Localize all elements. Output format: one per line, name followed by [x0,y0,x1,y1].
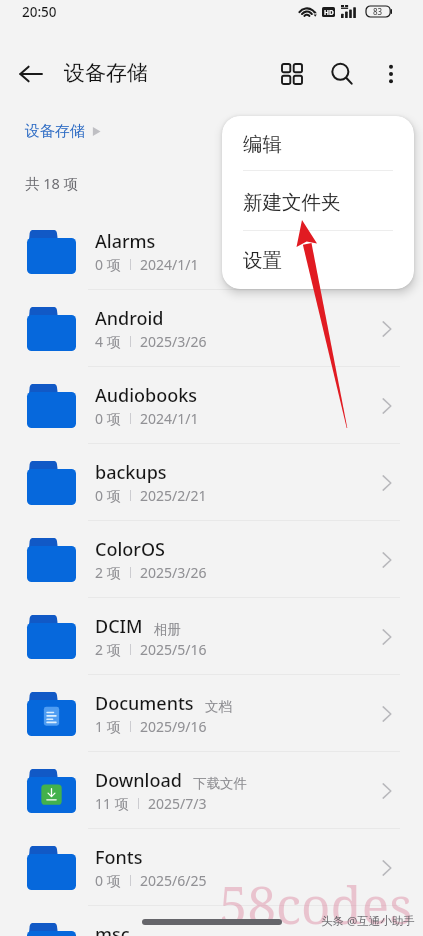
staticText: HD [324,8,334,17]
button[interactable]: Search [320,52,364,96]
button[interactable]: backups [0,444,423,521]
staticText: 0 项 [95,255,121,274]
button[interactable]: Audiobooks [0,367,423,444]
staticText: Fonts [95,845,143,870]
staticText: 2025/3/26 [140,332,207,351]
button[interactable]: Back [9,52,53,96]
button[interactable]: msc [0,906,423,936]
staticText: DCIM [95,614,143,639]
staticText: 2 项 [95,640,121,659]
staticText: 2025/5/16 [140,640,207,659]
button[interactable]: 设置 [222,232,414,289]
staticText: 设备存储 [25,122,85,141]
staticText: Download [95,768,182,793]
staticText: Documents [95,691,194,716]
staticText: backups [95,460,167,485]
staticText: 2 项 [95,563,121,582]
staticText: 设备存储 [64,60,148,86]
staticText: 58codes [219,869,413,936]
button[interactable]: Documents [0,675,423,752]
staticText: 编辑 [243,132,282,157]
button[interactable]: Fonts [0,829,423,906]
button[interactable]: 设备存储 [25,122,101,141]
button[interactable]: Alarms [0,213,423,290]
button[interactable]: More options [369,52,413,96]
staticText: 0 项 [95,486,121,505]
staticText: 2025/2/21 [140,486,207,505]
staticText: Android [95,306,164,331]
staticText: 0 项 [95,409,121,428]
staticText: Audiobooks [95,383,198,408]
staticText: 2025/3/26 [140,563,207,582]
staticText: 1 项 [95,717,121,736]
button[interactable]: Android [0,290,423,367]
button[interactable]: Download [0,752,423,829]
button[interactable]: DCIM [0,598,423,675]
staticText: ColorOS [95,537,165,562]
staticText: 新建文件夹 [243,190,341,215]
staticText: msc [95,922,130,936]
staticText: 2025/6/25 [140,871,207,890]
staticText: 共 18 项 [25,173,79,193]
button[interactable]: 新建文件夹 [222,173,414,232]
button[interactable]: 编辑 [222,116,414,173]
staticText: Alarms [95,229,156,254]
staticText: 2025/7/3 [148,794,207,813]
staticText: 2024/1/1 [140,255,199,274]
staticText: 相册 [154,621,181,638]
button[interactable]: ColorOS [0,521,423,598]
staticText: 设置 [243,248,282,273]
button[interactable]: Grid view [270,52,314,96]
staticText: 11 项 [95,794,129,813]
staticText: 83 [373,6,383,17]
staticText: 0 项 [95,871,121,890]
staticText: 2024/1/1 [140,409,199,428]
staticText: 2025/9/16 [140,717,207,736]
staticText: 文档 [205,698,232,715]
staticText: 4 项 [95,332,121,351]
staticText: 20:50 [22,3,57,21]
staticText: 下载文件 [193,775,247,792]
staticText: 头条 @互通小助手 [321,913,415,929]
